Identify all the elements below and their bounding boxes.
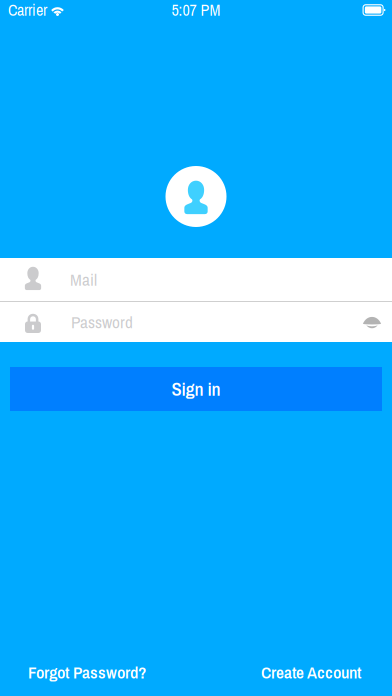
staticText: Forgot Password? bbox=[28, 661, 146, 684]
button[interactable]: Sign in bbox=[10, 367, 382, 411]
button[interactable]: Create Account bbox=[261, 661, 361, 684]
button[interactable]: Forgot Password? bbox=[28, 661, 146, 684]
staticText: Create Account bbox=[261, 661, 361, 684]
button[interactable]: Show password bbox=[359, 303, 385, 341]
staticText: Carrier bbox=[8, 0, 47, 21]
staticText: Mail bbox=[70, 268, 97, 291]
staticText: 5:07 PM bbox=[171, 0, 220, 21]
staticText: Password bbox=[71, 310, 133, 334]
staticText: Sign in bbox=[171, 376, 220, 401]
